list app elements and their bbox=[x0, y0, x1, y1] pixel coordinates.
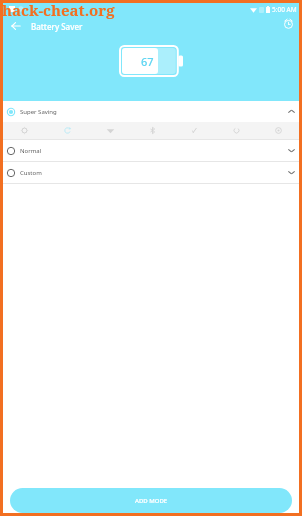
staticText: hack-cheat.org bbox=[2, 0, 115, 20]
staticText: Super Saving bbox=[20, 108, 57, 116]
staticText: Custom bbox=[20, 169, 42, 177]
button[interactable]: Back bbox=[3, 13, 29, 39]
staticText: Normal bbox=[20, 147, 42, 155]
staticText: Battery Saver bbox=[31, 21, 83, 32]
staticText: 67 bbox=[141, 54, 154, 69]
button[interactable]: Timer bbox=[275, 10, 301, 36]
button[interactable]: Custom bbox=[3, 162, 299, 183]
staticText: 5:00 AM bbox=[272, 5, 297, 14]
button[interactable]: ADD MODE bbox=[10, 488, 292, 513]
button[interactable]: Normal bbox=[3, 140, 299, 161]
button[interactable]: Super Saving bbox=[3, 101, 299, 122]
staticText: ADD MODE bbox=[135, 497, 168, 505]
